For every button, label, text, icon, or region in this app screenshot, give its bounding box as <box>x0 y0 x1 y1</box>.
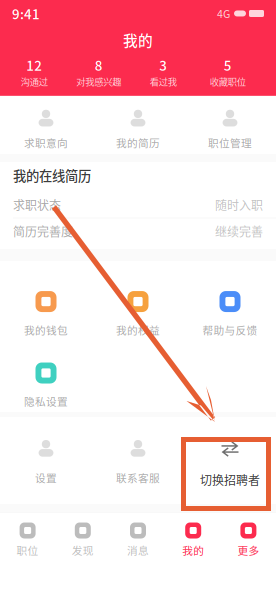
staticText: 12 <box>26 55 42 75</box>
staticText: 我的 <box>123 29 153 50</box>
staticText: 我的在线简历 <box>13 166 91 185</box>
button[interactable]: 更多 <box>221 522 276 558</box>
button[interactable]: 发现 <box>55 522 110 558</box>
staticText: 对我感兴趣 <box>76 75 121 88</box>
button[interactable]: 求职意向 <box>0 96 92 154</box>
button[interactable]: 我的 <box>166 522 221 558</box>
button[interactable]: 我的权益 <box>92 291 184 337</box>
staticText: 消息 <box>127 542 149 558</box>
staticText: 简历完善度 <box>13 223 73 240</box>
button[interactable]: 3 <box>131 55 195 88</box>
staticText: 3 <box>159 55 167 75</box>
button[interactable]: 帮助与反馈 <box>184 291 276 337</box>
button[interactable]: 8 <box>66 55 131 88</box>
staticText: 隐私设置 <box>24 393 68 409</box>
staticText: 4G <box>217 6 230 21</box>
button[interactable]: 5 <box>195 55 260 88</box>
staticText: 我的 <box>182 542 204 558</box>
staticText: 我的简历 <box>116 135 160 150</box>
button[interactable]: 我的简历 <box>92 96 184 154</box>
button[interactable]: 职位管理 <box>184 96 276 154</box>
staticText: 继续完善 <box>215 223 263 240</box>
staticText: 更多 <box>237 542 259 558</box>
button[interactable]: 简历完善度 <box>0 218 276 244</box>
staticText: 切换招聘者 <box>200 471 260 488</box>
staticText: 9:41 <box>12 4 40 23</box>
button[interactable]: 我的钱包 <box>0 291 92 337</box>
staticText: 求职意向 <box>24 135 68 150</box>
staticText: 看过我 <box>150 75 177 88</box>
button[interactable]: 设置 <box>0 417 92 504</box>
staticText: 收藏职位 <box>210 75 246 88</box>
staticText: 5 <box>224 55 232 75</box>
button[interactable]: 切换招聘者 <box>184 417 276 504</box>
staticText: 求职状态 <box>13 196 61 213</box>
staticText: 我的钱包 <box>24 322 68 337</box>
staticText: 联系客服 <box>116 470 160 485</box>
button[interactable]: 隐私设置 <box>0 362 92 409</box>
staticText: 职位管理 <box>208 135 252 150</box>
button[interactable]: 联系客服 <box>92 417 184 504</box>
button[interactable]: 12 <box>2 55 66 88</box>
staticText: 发现 <box>72 542 94 558</box>
staticText: 我的权益 <box>116 322 160 337</box>
staticText: 设置 <box>35 470 57 485</box>
staticText: 职位 <box>17 542 39 558</box>
staticText: 帮助与反馈 <box>202 322 257 337</box>
button[interactable]: 消息 <box>110 522 166 558</box>
staticText: 8 <box>95 55 103 75</box>
button[interactable]: 职位 <box>0 522 55 558</box>
staticText: 随时入职 <box>215 196 263 213</box>
button[interactable]: 求职状态 <box>0 192 276 218</box>
staticText: 沟通过 <box>21 75 48 88</box>
